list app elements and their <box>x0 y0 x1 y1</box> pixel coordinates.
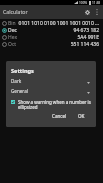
button[interactable]: General <box>11 86 90 96</box>
staticText: Show a warning when a number is ellipsiz… <box>18 99 91 111</box>
staticText: Dec <box>8 27 17 34</box>
button[interactable]: Hex <box>0 34 103 41</box>
staticText: 0101 1010 0100 1001 1001 0010 0011 <box>18 20 99 27</box>
staticText: 551 114 436 <box>19 41 99 48</box>
button[interactable]: Cancel <box>50 111 69 121</box>
button[interactable]: Oct <box>0 41 103 48</box>
staticText: 5A4 991E <box>20 34 99 41</box>
staticText: Oct <box>8 41 17 48</box>
staticText: General <box>11 88 87 94</box>
button[interactable]: Show a warning when a number is ellipsiz… <box>6 99 96 111</box>
staticText: Cancel <box>52 113 67 119</box>
staticText: Calculator <box>3 8 82 15</box>
staticText: 100% <box>79 1 88 5</box>
staticText: OK <box>78 113 85 119</box>
button[interactable]: Bin <box>0 20 103 27</box>
button[interactable]: Dark <box>11 76 90 86</box>
staticText: Bin <box>8 20 16 27</box>
staticText: Hex <box>8 34 18 41</box>
button[interactable]: Settings <box>82 7 93 18</box>
staticText: 94 673 182 <box>19 27 99 34</box>
button[interactable]: More options <box>93 8 101 16</box>
staticText: Dark <box>11 78 87 84</box>
button[interactable]: Dec <box>0 27 103 34</box>
staticText: Settings <box>11 67 34 75</box>
button[interactable]: OK <box>76 111 87 121</box>
staticText: 11:38 <box>92 1 101 5</box>
